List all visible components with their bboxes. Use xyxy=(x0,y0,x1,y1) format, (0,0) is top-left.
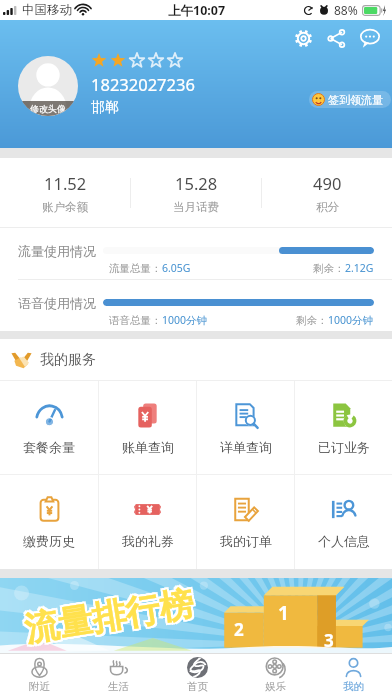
staticText: 18232027236 xyxy=(91,73,195,95)
staticText: 剩余： xyxy=(296,314,328,327)
staticText: 流量总量： xyxy=(109,262,162,275)
button[interactable]: 附近 xyxy=(0,653,79,696)
button[interactable]: 我的订单 xyxy=(197,475,294,569)
button[interactable]: 娱乐 xyxy=(236,653,314,696)
staticText: 流量排行榜 xyxy=(19,580,194,649)
staticText: 上午10:07 xyxy=(168,2,226,19)
staticText: 流量排行榜 xyxy=(21,580,196,649)
staticText: 邯郸 xyxy=(91,99,119,117)
staticText: 首页 xyxy=(187,680,208,693)
button[interactable]: 缴费历史 xyxy=(0,475,98,569)
button[interactable]: 已订业务 xyxy=(295,381,392,474)
staticText: 1000分钟 xyxy=(328,313,374,327)
button[interactable]: 签到领流量 xyxy=(309,91,391,108)
staticText: 6.05G xyxy=(162,261,191,275)
button[interactable]: 语音使用情况 xyxy=(0,280,392,331)
button[interactable]: 账单查询 xyxy=(99,381,196,474)
staticText: 详单查询 xyxy=(220,439,272,455)
staticText: 490 xyxy=(313,172,342,194)
button[interactable]: Messages xyxy=(353,25,386,51)
button[interactable]: 个人信息 xyxy=(295,475,392,569)
button[interactable]: 首页 xyxy=(158,653,236,696)
staticText: 1000分钟 xyxy=(162,313,208,327)
staticText: 2 xyxy=(234,618,244,641)
button[interactable]: Share xyxy=(320,25,353,51)
staticText: 15.28 xyxy=(175,172,218,194)
staticText: 11.52 xyxy=(44,172,87,194)
button[interactable]: 套餐余量 xyxy=(0,381,98,474)
button[interactable]: 11.52 xyxy=(0,158,130,227)
button[interactable]: 15.28 xyxy=(131,158,261,227)
staticText: 中国移动 xyxy=(22,2,72,18)
button[interactable]: Settings xyxy=(287,25,320,51)
staticText: 签到领流量 xyxy=(328,93,383,107)
button[interactable]: 490 xyxy=(262,158,392,227)
staticText: 账户余额 xyxy=(42,200,88,214)
button[interactable]: 修改头像 xyxy=(18,56,78,116)
staticText: 88% xyxy=(334,2,358,18)
staticText: 流量排行榜 xyxy=(23,580,198,649)
staticText: 2.12G xyxy=(345,261,374,275)
staticText: 我的 xyxy=(343,680,364,693)
button[interactable]: 我的 xyxy=(314,653,392,696)
staticText: 流量使用情况 xyxy=(18,243,96,259)
staticText: 3 xyxy=(324,629,334,652)
staticText: 已订业务 xyxy=(318,439,370,455)
staticText: 生活 xyxy=(108,680,129,693)
staticText: 流量排行榜 xyxy=(24,582,198,651)
staticText: 套餐余量 xyxy=(23,439,75,455)
staticText: 流量排行榜 xyxy=(20,584,195,653)
button[interactable]: 流量排行榜 xyxy=(0,578,392,653)
staticText: 账单查询 xyxy=(122,439,174,455)
staticText: 1 xyxy=(278,600,289,626)
staticText: 我的礼券 xyxy=(122,533,174,549)
staticText: 剩余： xyxy=(313,262,345,275)
staticText: 流量排行榜 xyxy=(22,584,197,653)
staticText: 我的服务 xyxy=(40,351,96,369)
staticText: 流量排行榜 xyxy=(20,582,194,651)
staticText: 当月话费 xyxy=(173,200,219,214)
button[interactable]: 详单查询 xyxy=(197,381,294,474)
staticText: 语音总量： xyxy=(109,314,162,327)
button[interactable]: 生活 xyxy=(79,653,158,696)
staticText: 附近 xyxy=(29,680,50,693)
staticText: 娱乐 xyxy=(265,680,286,693)
staticText: 我的订单 xyxy=(220,533,272,549)
staticText: 积分 xyxy=(316,200,339,214)
button[interactable]: 流量使用情况 xyxy=(0,228,392,279)
staticText: 流量排行榜 xyxy=(24,584,199,653)
staticText: 语音使用情况 xyxy=(18,295,96,311)
button[interactable]: 我的礼券 xyxy=(99,475,196,569)
staticText: 缴费历史 xyxy=(23,533,75,549)
staticText: 流量排行榜 xyxy=(22,582,196,651)
staticText: 个人信息 xyxy=(318,533,370,549)
staticText: 修改头像 xyxy=(30,103,66,114)
